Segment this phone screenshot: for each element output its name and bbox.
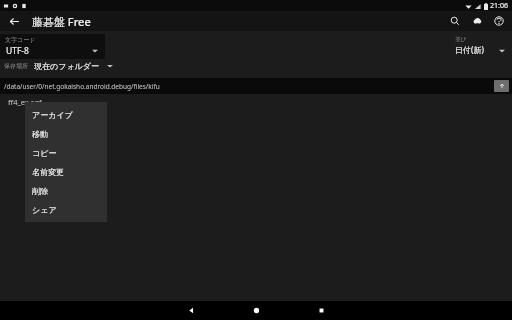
staticText: 日付(新) (455, 44, 484, 55)
button[interactable]: Back (6, 13, 22, 29)
button[interactable]: Home (243, 301, 269, 320)
staticText: 削除 (32, 186, 48, 196)
button[interactable]: 削除 (25, 181, 107, 200)
button[interactable]: コピー (25, 143, 107, 162)
staticText: 並び (455, 36, 467, 43)
staticText: 文字コード (5, 36, 36, 44)
button[interactable]: Help (491, 13, 507, 29)
button[interactable]: Back (178, 301, 204, 320)
staticText: 21:06 (490, 1, 508, 11)
staticText: /data/user/0/net.gokaisho.android.debug/… (4, 82, 160, 91)
button[interactable]: 並び (449, 34, 509, 59)
staticText: ff4_ex.sgf (8, 97, 42, 107)
staticText: アーカイブ (32, 110, 73, 120)
staticText: コピー (32, 148, 57, 158)
button[interactable]: 文字コード (0, 34, 105, 59)
staticText: シェア (32, 205, 57, 215)
staticText: 藤碁盤 Free (32, 14, 91, 29)
button[interactable]: 移動 (25, 124, 107, 143)
button[interactable]: シェア (25, 200, 107, 219)
button[interactable]: 名前変更 (25, 162, 107, 181)
staticText: 移動 (32, 129, 48, 139)
button[interactable]: 現在のフォルダー (34, 61, 113, 71)
staticText: UTF-8 (6, 45, 29, 57)
button[interactable]: Cloud (469, 13, 485, 29)
button[interactable]: Recents (308, 301, 334, 320)
staticText: 保存場所 (4, 62, 28, 70)
staticText: 名前変更 (32, 167, 64, 177)
button[interactable]: Up one folder (494, 80, 509, 92)
staticText: 現在のフォルダー (34, 61, 99, 71)
button[interactable]: Search (447, 13, 463, 29)
button[interactable]: アーカイブ (25, 105, 107, 124)
